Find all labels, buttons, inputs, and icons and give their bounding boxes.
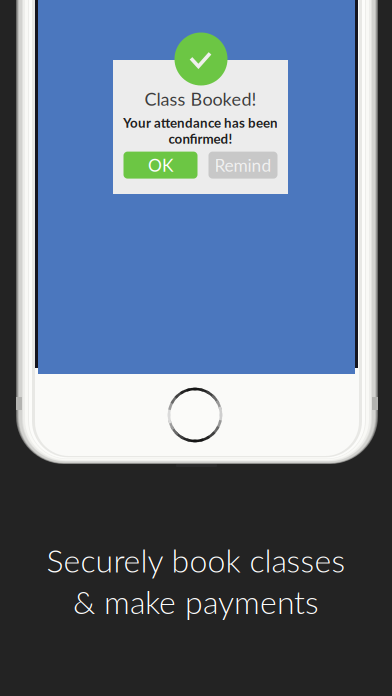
- staticText: Class Booked!: [144, 88, 256, 110]
- button[interactable]: OK: [123, 152, 197, 179]
- staticText: Securely book classes: [46, 541, 345, 579]
- staticText: & make payments: [73, 582, 319, 621]
- staticText: OK: [148, 155, 173, 175]
- button[interactable]: Remind: [208, 152, 277, 179]
- staticText: Remind: [214, 155, 271, 175]
- staticText: confirmed!: [168, 131, 232, 147]
- staticText: Your attendance has been: [123, 115, 278, 131]
